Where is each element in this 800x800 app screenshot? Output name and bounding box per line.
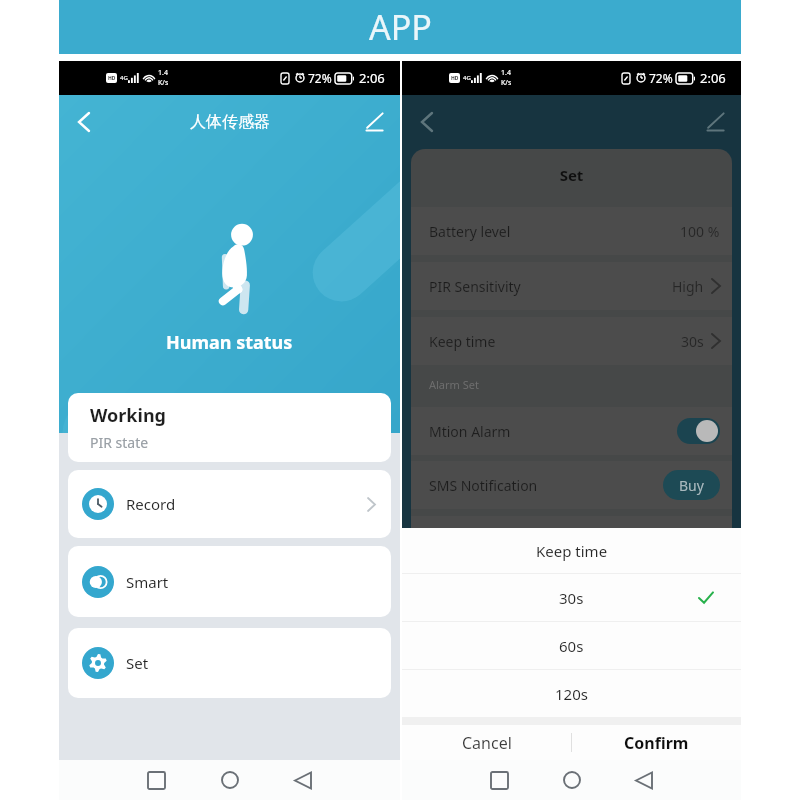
staticText: 1.4 [158, 68, 168, 78]
button[interactable]: Keep time [411, 317, 732, 365]
staticText: Working [90, 403, 166, 428]
staticText: Keep time [429, 332, 496, 351]
button[interactable]: Back [68, 106, 100, 138]
button[interactable]: Set [68, 628, 391, 698]
button[interactable]: 30s [402, 574, 741, 621]
staticText: 4G [120, 74, 128, 82]
button[interactable]: Confirm [572, 725, 741, 760]
button[interactable]: Back [288, 765, 318, 795]
staticText: Keep time [536, 541, 608, 561]
staticText: 2:06 [359, 69, 385, 87]
button[interactable]: Edit [358, 106, 390, 138]
staticText: 30s [559, 588, 584, 608]
staticText: Human status [166, 330, 293, 355]
staticText: 4G [463, 74, 471, 82]
staticText: 72% [649, 70, 673, 86]
button[interactable]: Back [411, 106, 443, 138]
staticText: 120s [555, 684, 588, 704]
button[interactable]: Recent apps [141, 765, 171, 795]
staticText: APP [369, 4, 432, 50]
button[interactable]: Recent apps [484, 765, 514, 795]
staticText: SMS Notification [429, 476, 538, 495]
staticText: HD [108, 75, 116, 82]
staticText: K/s [501, 78, 512, 88]
button[interactable]: Record [68, 470, 391, 538]
button[interactable]: 120s [402, 670, 741, 717]
staticText: PIR Sensitivity [429, 277, 521, 296]
staticText: 1.4 [501, 68, 511, 78]
button[interactable]: Home [215, 765, 245, 795]
button[interactable]: Mtion Alarm [411, 407, 732, 455]
button[interactable]: SMS Notification [411, 461, 732, 509]
staticText: 72% [308, 70, 332, 86]
staticText: Cancel [462, 732, 512, 754]
staticText: HD [451, 75, 459, 82]
button[interactable]: Buy [663, 470, 720, 500]
button[interactable]: Home [557, 765, 587, 795]
button[interactable]: 60s [402, 622, 741, 669]
button[interactable]: Back [629, 765, 659, 795]
staticText: 30s [681, 332, 704, 351]
button[interactable]: Smart [68, 546, 391, 617]
staticText: 100 % [680, 222, 720, 241]
button[interactable]: Working [68, 393, 391, 462]
staticText: K/s [158, 78, 169, 88]
staticText: 2:06 [700, 69, 726, 87]
button[interactable]: Battery level [411, 207, 732, 255]
staticText: Set [126, 653, 149, 673]
staticText: PIR state [90, 433, 149, 452]
staticText: Mtion Alarm [429, 422, 511, 441]
staticText: Battery level [429, 222, 511, 241]
staticText: 60s [559, 636, 584, 656]
button[interactable]: Edit [699, 106, 731, 138]
staticText: Alarm Set [429, 377, 479, 392]
button[interactable]: PIR Sensitivity [411, 262, 732, 310]
staticText: Confirm [624, 732, 689, 754]
staticText: Record [126, 494, 176, 514]
staticText: 人体传感器 [190, 112, 270, 132]
staticText: Set [411, 165, 732, 185]
button[interactable]: Cancel [402, 725, 571, 760]
staticText: Buy [679, 476, 704, 495]
staticText: High [672, 277, 704, 296]
staticText: Smart [126, 572, 169, 592]
